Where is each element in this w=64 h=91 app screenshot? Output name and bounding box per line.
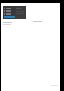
- button[interactable]: [3, 21, 12, 25]
- button[interactable]: [4, 8, 14, 10]
- button[interactable]: [4, 11, 14, 13]
- button[interactable]: Primary action: [4, 16, 15, 18]
- button[interactable]: [4, 9, 14, 11]
- button[interactable]: [4, 12, 14, 14]
- button[interactable]: [4, 14, 14, 16]
